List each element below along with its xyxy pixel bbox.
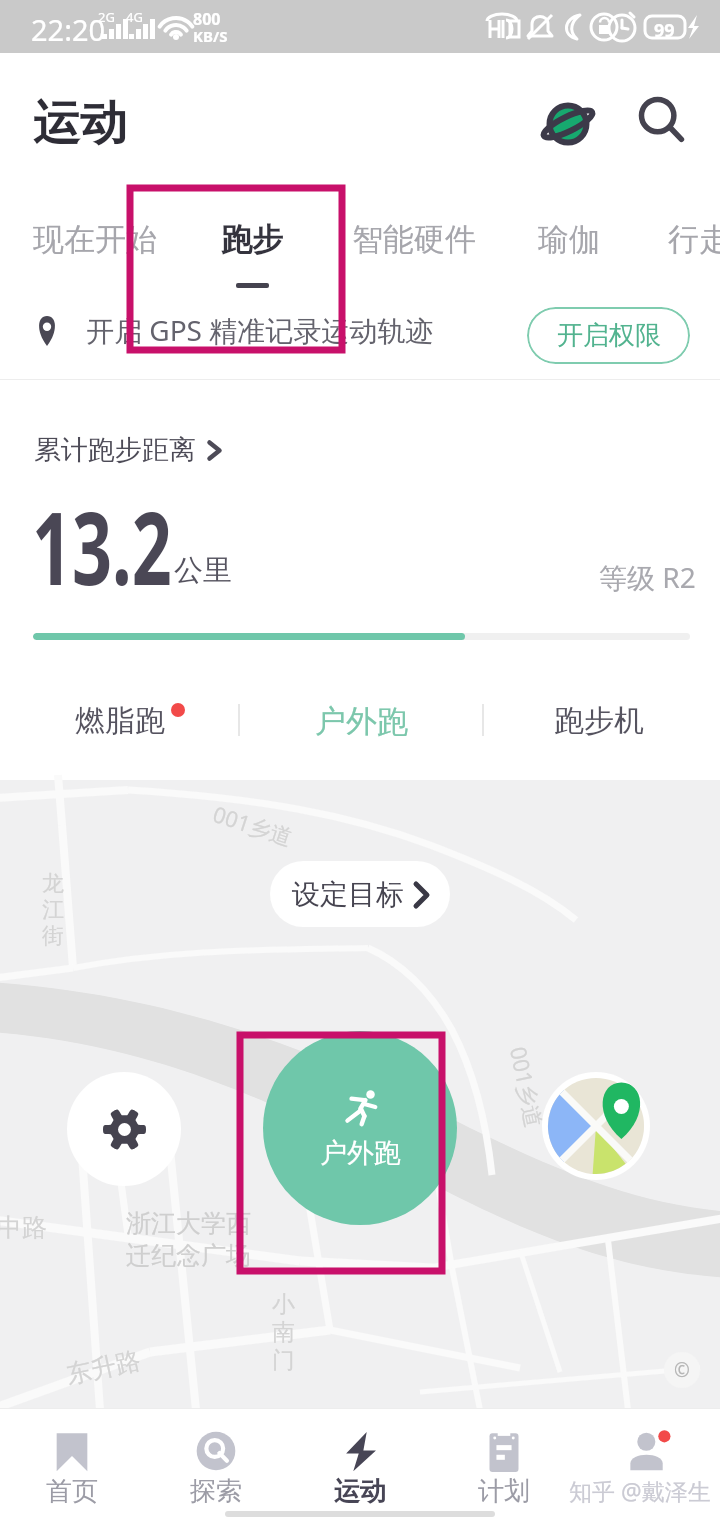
staticText: 运动: [334, 1475, 386, 1508]
button[interactable]: Settings: [67, 1072, 181, 1186]
staticText: 800: [193, 8, 221, 30]
button[interactable]: 跑步: [221, 220, 283, 259]
button[interactable]: 累计跑步距离: [34, 433, 221, 467]
staticText: 知乎 @戴泽生: [569, 1475, 711, 1506]
staticText: 中路: [0, 1212, 47, 1243]
button[interactable]: 计划: [432, 1408, 576, 1520]
staticText: 户外跑: [320, 1136, 401, 1170]
staticText: 累计跑步距离: [34, 433, 196, 467]
staticText: ©: [674, 1357, 690, 1383]
button[interactable]: 开启权限: [527, 307, 690, 364]
button[interactable]: Search: [632, 91, 692, 151]
button[interactable]: 燃脂跑: [75, 702, 185, 740]
button[interactable]: 户外跑: [315, 702, 408, 741]
button[interactable]: 跑步机: [554, 702, 644, 740]
button[interactable]: 探索: [144, 1408, 288, 1520]
staticText: 户外跑: [315, 702, 408, 741]
staticText: 公里: [174, 552, 232, 589]
staticText: 行走: [668, 220, 720, 259]
staticText: 现在开始: [33, 220, 157, 259]
staticText: 探索: [190, 1475, 242, 1508]
staticText: 跑步: [221, 220, 283, 259]
button[interactable]: 设定目标: [270, 861, 450, 927]
staticText: 浙江大学西 迁纪念广场: [126, 1208, 251, 1271]
staticText: 13.2: [32, 478, 172, 614]
button[interactable]: 智能硬件: [352, 220, 476, 259]
staticText: 开启 GPS 精准记录运动轨迹: [86, 311, 434, 349]
button[interactable]: Discover: [538, 94, 598, 154]
staticText: 设定目标: [292, 877, 404, 912]
button[interactable]: 运动: [288, 1408, 432, 1520]
staticText: 22:20: [31, 10, 106, 49]
button[interactable]: 现在开始: [33, 220, 157, 259]
button[interactable]: Map mode: [542, 1072, 650, 1180]
button[interactable]: 行走: [668, 220, 720, 259]
staticText: 首页: [46, 1475, 98, 1508]
staticText: 计划: [478, 1475, 530, 1508]
staticText: 等级 R2: [599, 558, 696, 596]
staticText: 燃脂跑: [75, 702, 165, 740]
staticText: 运动: [33, 94, 127, 153]
button[interactable]: 瑜伽: [538, 220, 600, 259]
staticText: 4G: [126, 8, 143, 26]
staticText: 99: [654, 18, 675, 43]
staticText: 智能硬件: [352, 220, 476, 259]
staticText: 小 南 门: [272, 1290, 295, 1375]
staticText: 瑜伽: [538, 220, 600, 259]
staticText: 2G: [98, 8, 115, 26]
staticText: 001乡道: [209, 798, 297, 852]
button[interactable]: [576, 1408, 720, 1520]
staticText: 跑步机: [554, 702, 644, 740]
staticText: 001乡道: [504, 1044, 550, 1130]
staticText: 开启权限: [557, 319, 661, 352]
button[interactable]: 户外跑: [263, 1031, 457, 1225]
staticText: 龙 江 街: [42, 870, 64, 950]
button[interactable]: 首页: [0, 1408, 144, 1520]
staticText: KB/S: [193, 26, 228, 46]
staticText: 东升路: [64, 1344, 143, 1390]
button[interactable]: 开启 GPS 精准记录运动轨迹: [0, 296, 720, 379]
